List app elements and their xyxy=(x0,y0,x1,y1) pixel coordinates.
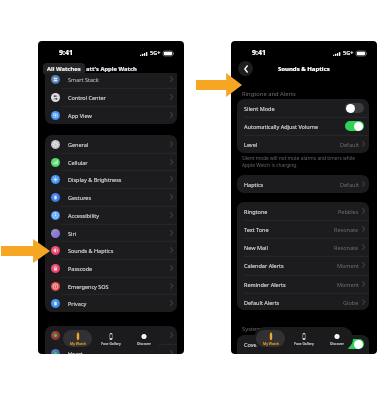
staticText: Discover xyxy=(137,341,151,346)
button[interactable]: Default Alerts xyxy=(237,293,369,310)
button[interactable]: Cover to Mute xyxy=(237,335,369,353)
staticText: Level xyxy=(244,141,258,148)
staticText: Cellular xyxy=(68,159,88,166)
staticText: Calendar Alerts xyxy=(244,262,284,269)
staticText: Silent mode will not mute alarms and tim… xyxy=(242,155,357,169)
staticText: Text Tone xyxy=(244,226,269,233)
staticText: Default xyxy=(340,181,359,188)
staticText: System Sounds & Haptics xyxy=(242,325,311,333)
staticText: Ringtone xyxy=(244,208,268,215)
staticText: Display & Brightness xyxy=(68,176,122,183)
button[interactable]: Text Tone xyxy=(237,220,369,238)
staticText: Default Alerts xyxy=(244,299,280,306)
button[interactable]: My Watch xyxy=(63,330,92,347)
button[interactable]: Privacy xyxy=(45,294,177,312)
button[interactable]: App View xyxy=(45,106,177,124)
button[interactable]: Back xyxy=(238,61,253,76)
button[interactable]: Discover xyxy=(129,330,158,347)
staticText: Heart xyxy=(68,350,83,354)
button[interactable]: Control Center xyxy=(45,88,177,106)
button[interactable]: Accessibility xyxy=(45,206,177,224)
button[interactable]: Display & Brightness xyxy=(45,170,177,188)
staticText: Privacy xyxy=(68,300,87,307)
staticText: att's Apple Watch xyxy=(86,65,137,73)
staticText: My Watch xyxy=(263,341,279,346)
staticText: Face Gallery xyxy=(294,341,314,346)
staticText: Control Center xyxy=(68,94,106,101)
button[interactable]: My Watch xyxy=(256,330,285,347)
button[interactable]: Automatically Adjust Volume xyxy=(237,117,369,135)
staticText: Ringtone and Alerts xyxy=(242,90,296,98)
button[interactable]: Siri xyxy=(45,224,177,242)
staticText: Sounds & Haptics xyxy=(68,247,114,254)
button[interactable]: Face Gallery xyxy=(96,330,125,347)
button[interactable]: Smart Stack xyxy=(45,73,177,88)
button[interactable]: att's Apple Watch xyxy=(84,63,139,75)
staticText: My Watch xyxy=(70,341,86,346)
button[interactable]: Silent Mode xyxy=(237,99,369,117)
staticText: Emergency SOS xyxy=(68,283,109,290)
button[interactable]: Sounds & Haptics xyxy=(45,241,177,259)
button[interactable]: Health xyxy=(45,326,177,344)
button[interactable]: Heart xyxy=(45,344,177,354)
staticText: Smart Stack xyxy=(68,76,99,83)
button[interactable]: Gestures xyxy=(45,188,177,206)
staticText: Default xyxy=(340,141,359,148)
staticText: Discover xyxy=(330,341,344,346)
staticText: Health xyxy=(68,332,86,339)
button[interactable]: Cellular xyxy=(45,153,177,171)
button[interactable]: Ringtone xyxy=(237,202,369,220)
staticText: New Mail xyxy=(244,244,268,251)
staticText: 5G+ xyxy=(150,49,161,56)
button[interactable]: Reminder Alerts xyxy=(237,275,369,293)
staticText: Automatically Adjust Volume xyxy=(244,123,319,130)
staticText: Siri xyxy=(68,230,77,237)
button[interactable]: New Mail xyxy=(237,238,369,256)
staticText: Haptics xyxy=(244,181,264,188)
staticText: 9:41 xyxy=(252,48,266,58)
staticText: 9:41 xyxy=(59,48,73,58)
staticText: General xyxy=(68,141,89,148)
button[interactable]: Emergency SOS xyxy=(45,277,177,295)
staticText: Face Gallery xyxy=(101,341,121,346)
button[interactable]: All Watches xyxy=(43,63,85,75)
staticText: Silent Mode xyxy=(244,105,275,112)
staticText: Moment xyxy=(337,262,359,269)
staticText: Moment xyxy=(337,281,359,288)
button[interactable]: Face Gallery xyxy=(289,330,318,347)
button[interactable]: Passcode xyxy=(45,259,177,277)
staticText: Pebbles xyxy=(338,208,359,215)
staticText: 5G+ xyxy=(343,49,354,56)
button[interactable]: Calendar Alerts xyxy=(237,256,369,274)
button[interactable]: General xyxy=(45,135,177,153)
staticText: Accessibility xyxy=(68,212,100,219)
button[interactable]: Haptics xyxy=(237,175,369,193)
button[interactable]: Level xyxy=(237,135,369,153)
staticText: Resonate xyxy=(334,244,359,251)
staticText: Sounds & Haptics xyxy=(278,65,330,73)
staticText: Resonate xyxy=(334,226,359,233)
staticText: Cover to Mute xyxy=(244,341,281,348)
staticText: Reminder Alerts xyxy=(244,281,286,288)
staticText: Globe xyxy=(343,299,359,306)
staticText: Passcode xyxy=(68,265,93,272)
staticText: Gestures xyxy=(68,194,92,201)
staticText: App View xyxy=(68,112,92,119)
button[interactable]: Discover xyxy=(322,330,351,347)
staticText: All Watches xyxy=(47,65,81,73)
